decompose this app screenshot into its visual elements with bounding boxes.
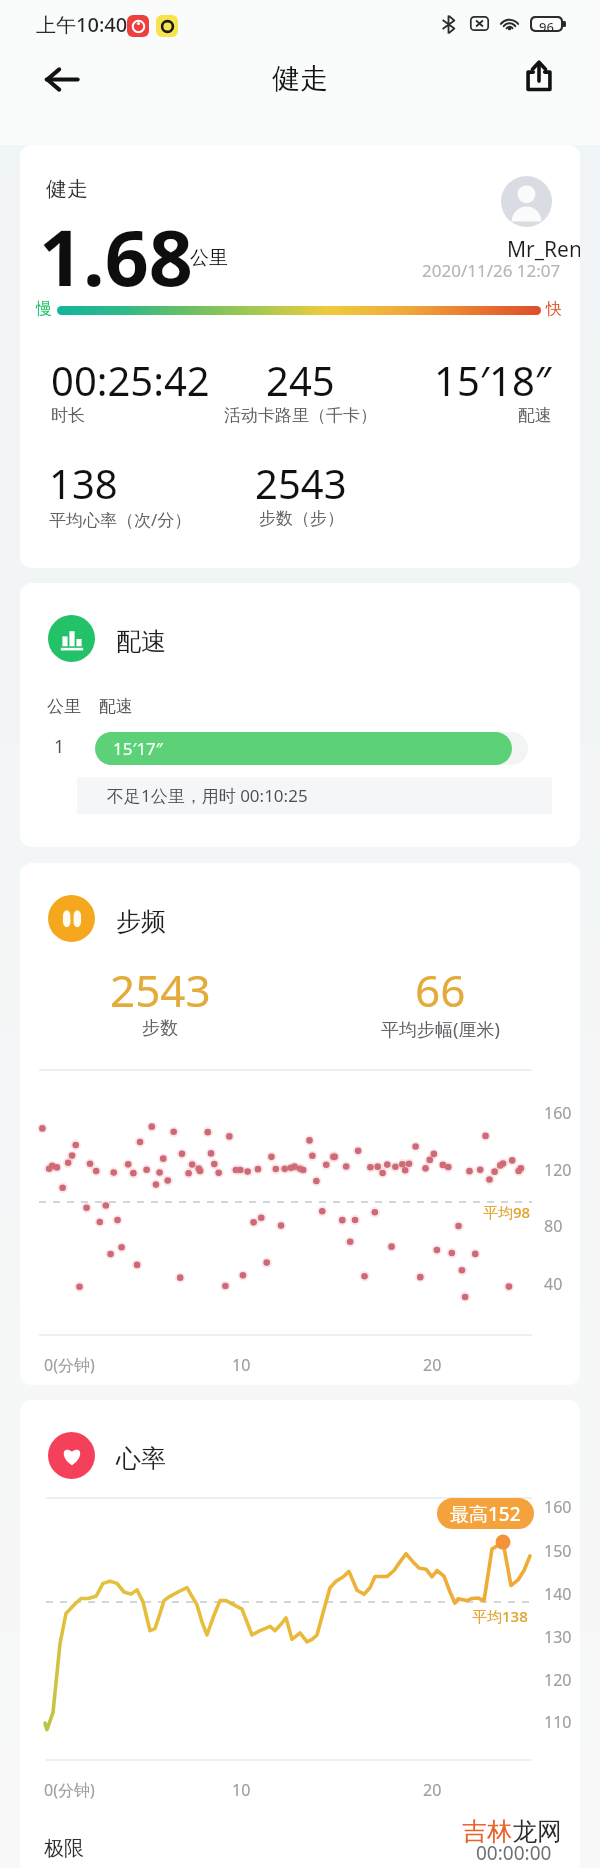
staticText: 慢 [36, 299, 52, 319]
staticText: 不足1公里，用时 00:10:25 [107, 784, 308, 807]
staticText: 配速 [116, 626, 166, 657]
staticText: 15′17″ [113, 737, 163, 760]
staticText: 平均98 [483, 1202, 531, 1222]
staticText: 公里 [190, 246, 228, 270]
staticText: 0(分钟) [44, 1779, 95, 1801]
staticText: 140 [544, 1583, 572, 1605]
staticText: 健走 [46, 176, 88, 202]
staticText: 活动卡路里（千卡） [224, 405, 377, 426]
staticText: 120 [544, 1159, 572, 1181]
staticText: 15′18″ [434, 353, 552, 407]
staticText: 20 [423, 1354, 442, 1376]
staticText: 步数 [142, 1017, 178, 1040]
staticText: 快 [546, 299, 562, 319]
staticText: 10 [232, 1779, 251, 1801]
staticText: 80 [544, 1215, 563, 1237]
staticText: 120 [544, 1669, 572, 1691]
staticText: 健走 [272, 61, 328, 96]
staticText: 66 [415, 960, 466, 1020]
staticText: 110 [544, 1711, 572, 1733]
staticText: 2543 [110, 960, 211, 1020]
staticText: 130 [544, 1626, 572, 1648]
staticText: 配速 [99, 696, 133, 717]
staticText: 公里 [47, 696, 81, 717]
staticText: 0(分钟) [44, 1354, 95, 1376]
staticText: 10 [232, 1354, 251, 1376]
staticText: 160 [544, 1496, 572, 1518]
staticText: 平均心率（次/分） [49, 508, 192, 531]
staticText: 龙网 [512, 1816, 562, 1847]
staticText: 1 [54, 734, 65, 759]
staticText: 最高152 [450, 1501, 521, 1527]
staticText: 150 [544, 1540, 572, 1562]
staticText: 步频 [116, 906, 166, 937]
staticText: 配速 [518, 405, 552, 426]
staticText: 2020/11/26 12:07 [422, 259, 561, 282]
staticText: 00:00:00 [476, 1840, 552, 1866]
staticText: 2543 [255, 456, 347, 510]
staticText: 时长 [51, 405, 85, 426]
staticText: 1.68 [39, 204, 193, 309]
staticText: 上午10:40 [36, 11, 128, 38]
staticText: 160 [544, 1102, 572, 1124]
staticText: 96 [539, 18, 554, 30]
staticText: 极限 [44, 1836, 84, 1861]
staticText: 平均步幅(厘米) [381, 1017, 500, 1042]
staticText: 138 [49, 456, 118, 510]
staticText: 心率 [116, 1443, 166, 1474]
staticText: 00:25:42 [51, 353, 210, 407]
staticText: Mr_Ren [507, 235, 580, 264]
staticText: 步数（步） [259, 508, 344, 529]
staticText: 245 [266, 353, 335, 407]
staticText: 40 [544, 1273, 563, 1295]
staticText: 平均138 [472, 1606, 528, 1626]
button[interactable]: Back [37, 55, 85, 103]
staticText: 吉林 [462, 1816, 512, 1847]
staticText: 20 [423, 1779, 442, 1801]
button[interactable]: Share [515, 51, 563, 99]
